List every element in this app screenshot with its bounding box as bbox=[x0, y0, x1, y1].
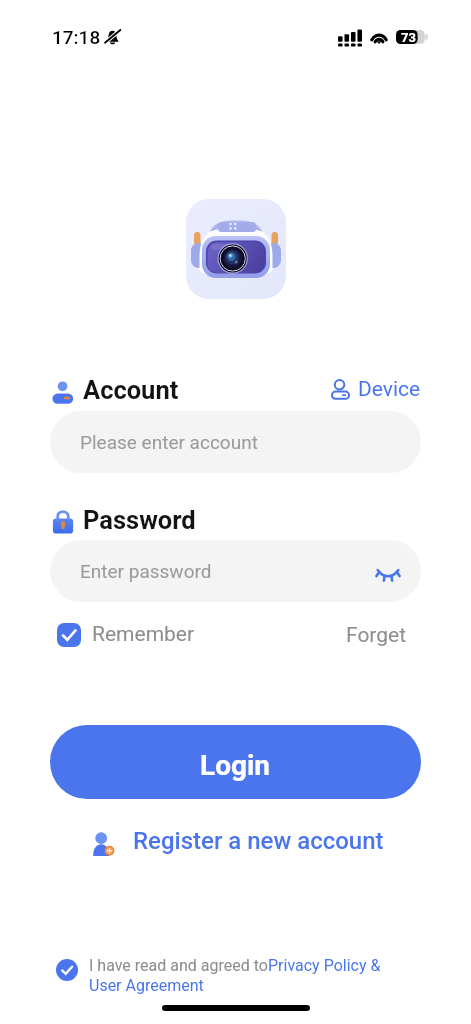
button[interactable]: Forget bbox=[346, 623, 407, 648]
button[interactable]: Agree to privacy policy bbox=[56, 959, 78, 981]
button[interactable]: Login bbox=[50, 725, 421, 799]
staticText: Enter password bbox=[80, 560, 212, 582]
button[interactable]: Please enter account bbox=[50, 411, 421, 473]
staticText: Please enter account bbox=[80, 431, 258, 453]
button[interactable]: User Agreement bbox=[89, 976, 204, 995]
staticText: Remember bbox=[92, 622, 195, 647]
button[interactable]: Register a new account bbox=[90, 828, 384, 856]
staticText: Account bbox=[83, 375, 179, 405]
button[interactable]: Show password bbox=[366, 549, 410, 593]
button[interactable]: Remember bbox=[57, 622, 195, 647]
staticText: Password bbox=[83, 505, 196, 535]
staticText: Register a new account bbox=[133, 827, 384, 855]
staticText: I have read and agreed to bbox=[89, 956, 268, 975]
staticText: Device bbox=[358, 377, 421, 402]
staticText: Login bbox=[200, 749, 271, 782]
button[interactable]: Privacy Policy & bbox=[268, 956, 381, 975]
staticText: 17:18 bbox=[52, 26, 101, 48]
button[interactable]: Device bbox=[331, 377, 421, 402]
staticText: 73 bbox=[401, 30, 416, 45]
